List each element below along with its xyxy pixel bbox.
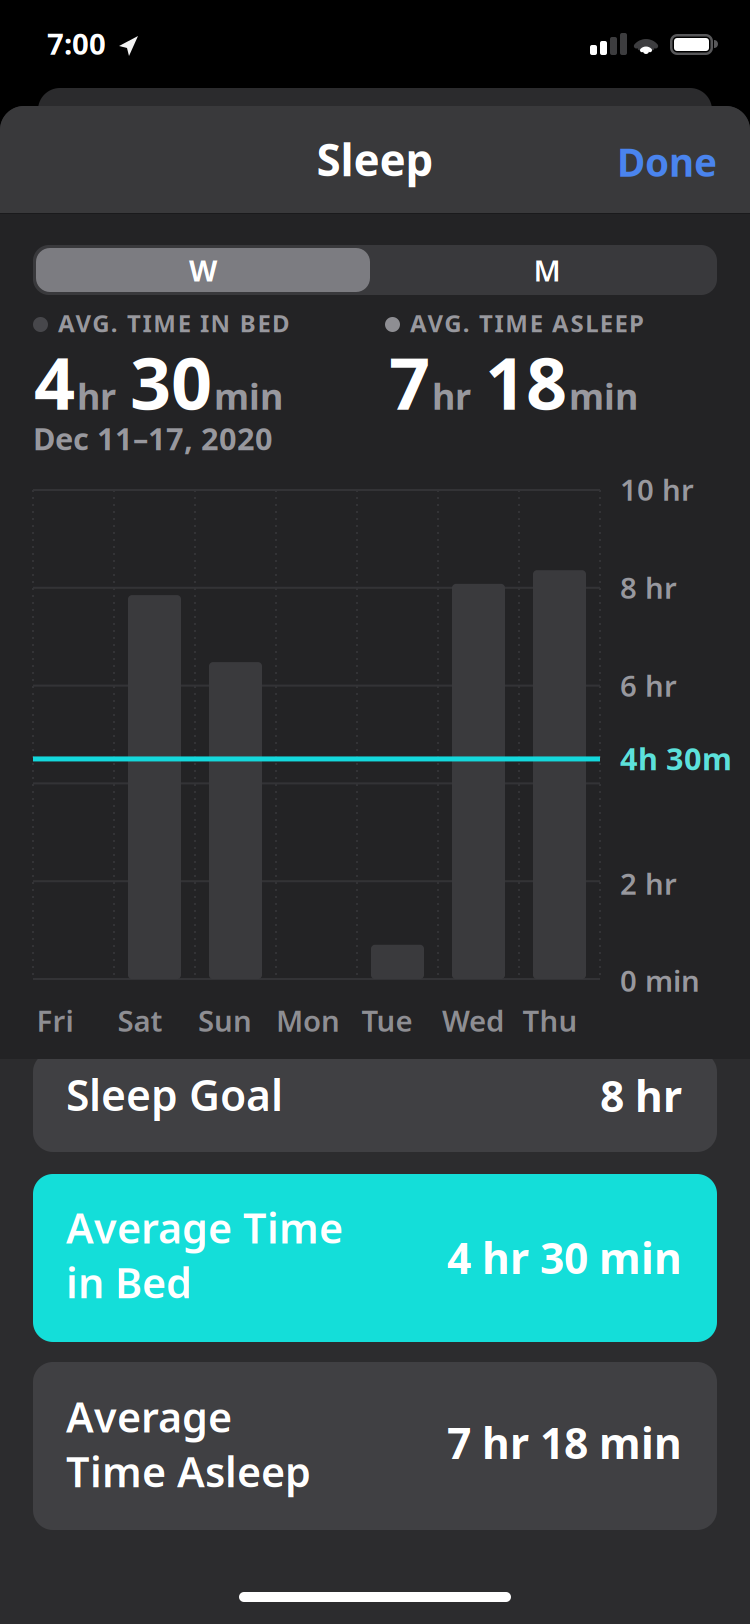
staticText: Done (617, 136, 717, 187)
staticText: Sleep (316, 130, 433, 188)
staticText: M (533, 250, 560, 289)
staticText: Thu (522, 1001, 577, 1040)
button[interactable]: Done (617, 136, 717, 187)
staticText: min (569, 372, 638, 420)
staticText: Sun (198, 1001, 252, 1040)
staticText: W (189, 250, 217, 289)
staticText: 0 min (620, 961, 700, 1000)
staticText: 7 hr 18 min (447, 1414, 682, 1471)
staticText: Sleep Goal (66, 1066, 283, 1123)
staticText: 7 (389, 334, 430, 430)
staticText: 4 (34, 334, 75, 430)
button[interactable]: Average (33, 1362, 717, 1530)
staticText: Average (66, 1389, 232, 1444)
staticText: Average Time (66, 1200, 343, 1255)
staticText: 4 hr 30 min (447, 1229, 682, 1286)
staticText: Time Asleep (66, 1444, 311, 1499)
staticText: 8 hr (600, 1067, 682, 1124)
staticText: hr (77, 372, 116, 420)
staticText: Tue (361, 1001, 412, 1040)
staticText: 10 hr (620, 470, 694, 509)
button[interactable]: W (36, 248, 370, 292)
staticText: Fri (36, 1001, 73, 1040)
button[interactable]: Sleep Goal (33, 1052, 717, 1152)
staticText: hr (432, 372, 471, 420)
staticText: 7:00 (47, 24, 106, 63)
staticText: Sat (117, 1001, 162, 1040)
staticText: AVG. TIME ASLEEP (410, 307, 644, 339)
staticText: 18 (485, 334, 567, 430)
staticText: 8 hr (620, 568, 677, 607)
staticText: AVG. TIME IN BED (58, 307, 290, 339)
button[interactable]: Average Time (33, 1174, 717, 1342)
staticText: min (214, 372, 283, 420)
staticText: 6 hr (620, 666, 677, 705)
staticText: Mon (276, 1001, 340, 1040)
staticText: 4h 30m (620, 738, 732, 779)
button[interactable]: M (380, 248, 714, 292)
staticText: 30 (130, 334, 212, 430)
staticText: in Bed (66, 1255, 192, 1310)
staticText: Wed (442, 1001, 504, 1040)
staticText: Dec 11–17, 2020 (33, 418, 273, 459)
staticText: 2 hr (620, 864, 677, 903)
